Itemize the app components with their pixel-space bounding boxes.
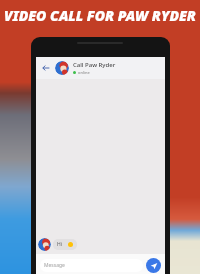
button[interactable]: Hi (53, 239, 77, 250)
button[interactable]: Contact avatar (55, 61, 69, 75)
staticText: Hi (57, 241, 62, 248)
button[interactable]: Back (39, 61, 53, 75)
button[interactable]: Message (40, 259, 143, 272)
staticText: VIDEO CALL FOR PAW RYDER (0, 6, 200, 25)
button[interactable]: Send (146, 258, 161, 273)
staticText: online (78, 70, 90, 75)
staticText: Call Paw Ryder (73, 61, 116, 69)
staticText: Message (44, 262, 65, 269)
